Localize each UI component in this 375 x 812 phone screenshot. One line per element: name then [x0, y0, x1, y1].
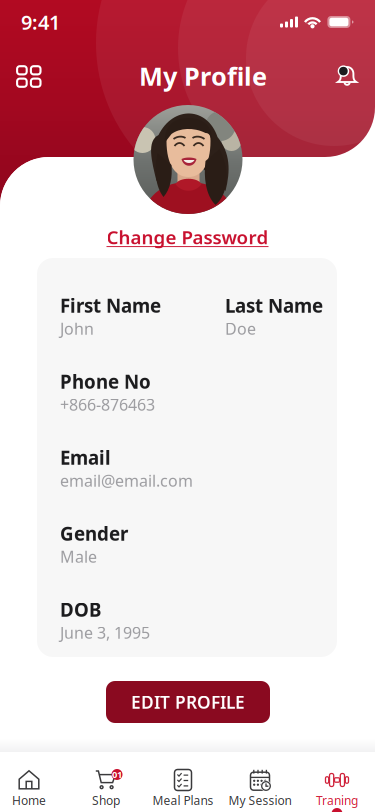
- staticText: email@email.com: [60, 470, 193, 491]
- staticText: Phone No: [60, 369, 151, 394]
- button[interactable]: Change Password: [87, 225, 287, 249]
- staticText: My Session: [228, 792, 291, 808]
- staticText: June 3, 1995: [60, 622, 150, 643]
- staticText: John: [60, 318, 94, 339]
- staticText: DOB: [60, 597, 101, 622]
- staticText: 9:41: [21, 9, 60, 35]
- button[interactable]: Menu: [7, 54, 51, 98]
- staticText: Change Password: [106, 225, 268, 249]
- button[interactable]: Traning: [298, 752, 375, 812]
- staticText: Last Name: [225, 293, 323, 318]
- button[interactable]: Meal Plans: [144, 752, 221, 812]
- staticText: Shop: [92, 792, 120, 808]
- button[interactable]: Home: [0, 752, 67, 812]
- staticText: Gender: [60, 521, 128, 546]
- staticText: Home: [12, 792, 46, 808]
- staticText: Meal Plans: [152, 792, 213, 808]
- staticText: Doe: [225, 318, 256, 339]
- staticText: 01: [112, 768, 122, 781]
- button[interactable]: Shop: [67, 752, 144, 812]
- staticText: Male: [60, 546, 97, 567]
- button[interactable]: Notifications: [325, 54, 369, 98]
- staticText: Traning: [316, 792, 358, 808]
- staticText: EDIT PROFILE: [131, 690, 245, 713]
- staticText: First Name: [60, 293, 161, 318]
- staticText: +866-876463: [60, 394, 155, 415]
- button[interactable]: My Session: [221, 752, 298, 812]
- staticText: Email: [60, 445, 111, 470]
- button[interactable]: EDIT PROFILE: [106, 681, 270, 723]
- staticText: My Profile: [139, 59, 267, 93]
